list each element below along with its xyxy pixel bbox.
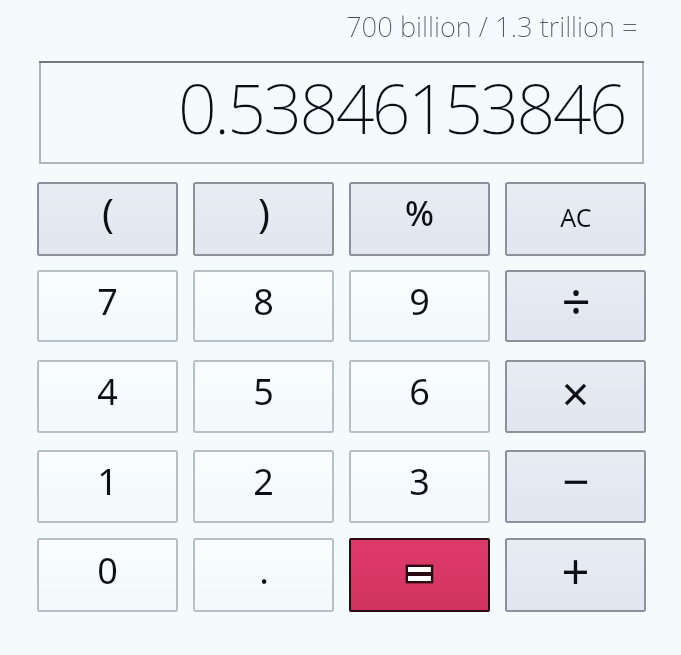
staticText: 7 (97, 277, 118, 326)
staticText: ) (258, 185, 270, 239)
staticText: 8 (253, 277, 274, 326)
button[interactable]: Equals (349, 538, 490, 612)
staticText: 3 (409, 457, 430, 506)
button[interactable]: Plus (505, 538, 646, 612)
button[interactable]: 3 (349, 450, 490, 523)
staticText: 5 (253, 367, 274, 416)
button[interactable]: Decimal point (193, 538, 334, 612)
staticText: × (561, 360, 590, 427)
staticText: 9 (409, 277, 430, 326)
button[interactable]: 0 (37, 538, 178, 612)
button[interactable]: 2 (193, 450, 334, 523)
staticText: ( (102, 185, 114, 239)
staticText: % (405, 190, 434, 236)
button[interactable]: Open bracket (37, 182, 178, 256)
button[interactable]: 4 (37, 360, 178, 433)
staticText: 0 (97, 546, 118, 595)
staticText: ÷ (561, 270, 591, 334)
staticText: = (406, 541, 433, 605)
button[interactable]: 8 (193, 270, 334, 342)
staticText: 700 billion / 1.3 trillion = (346, 8, 638, 45)
button[interactable]: 6 (349, 360, 490, 433)
button[interactable]: All clear (505, 182, 646, 256)
staticText: 6 (409, 367, 430, 416)
staticText: 0.53846153846 (178, 61, 625, 154)
button[interactable]: Percent (349, 182, 490, 256)
button[interactable]: Multiply (505, 360, 646, 433)
button[interactable]: Minus (505, 450, 646, 523)
staticText: − (562, 450, 590, 513)
staticText: 1 (97, 457, 118, 506)
button[interactable]: 9 (349, 270, 490, 342)
staticText: . (259, 546, 269, 595)
button[interactable]: Close bracket (193, 182, 334, 256)
staticText: + (561, 538, 590, 604)
button[interactable]: 5 (193, 360, 334, 433)
staticText: 2 (253, 457, 274, 506)
button[interactable]: 7 (37, 270, 178, 342)
staticText: AC (560, 200, 592, 234)
staticText: = (406, 541, 433, 605)
button[interactable]: 1 (37, 450, 178, 523)
button[interactable]: 0.53846153846 (39, 61, 644, 164)
staticText: 4 (97, 367, 118, 416)
button[interactable]: Divide (505, 270, 646, 342)
